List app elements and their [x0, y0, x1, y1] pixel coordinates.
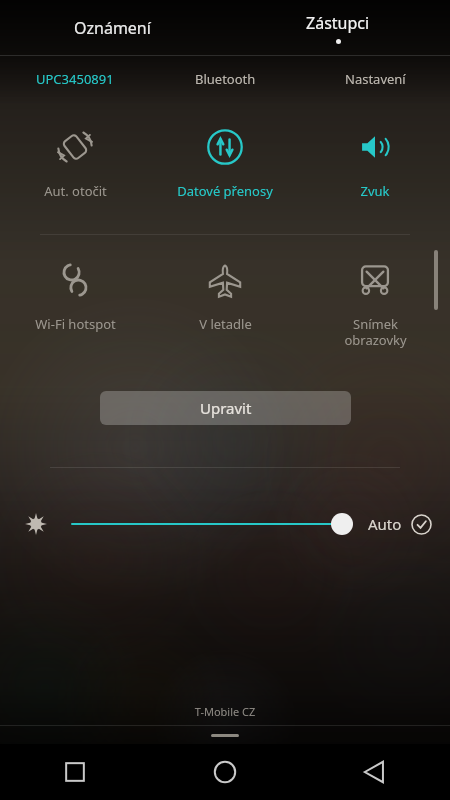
button[interactable]: Oznámení	[0, 0, 225, 55]
button[interactable]: UPC3450891	[0, 56, 150, 102]
staticText: Wi-Fi hotspot	[35, 315, 116, 333]
button[interactable]: Zástupci	[225, 0, 450, 55]
staticText: Oznámení	[74, 17, 151, 39]
staticText: Aut. otočit	[44, 182, 107, 200]
button[interactable]: Aut. otočit	[0, 102, 150, 234]
button[interactable]: Recents	[0, 744, 150, 800]
button[interactable]: Zvuk	[300, 102, 450, 234]
button[interactable]: Wi-Fi hotspot	[0, 235, 150, 367]
button[interactable]: Brightness	[0, 504, 72, 544]
button[interactable]: V letadle	[150, 235, 300, 367]
staticText: UPC3450891	[36, 70, 114, 88]
staticText: Datové přenosy	[177, 182, 273, 200]
staticText: T-Mobile CZ	[0, 704, 450, 719]
staticText: Zvuk	[360, 182, 390, 200]
staticText: Upravit	[200, 398, 252, 418]
button[interactable]: Bluetooth	[150, 56, 300, 102]
staticText: V letadle	[199, 315, 252, 333]
staticText: Snímek obrazovky	[344, 315, 407, 348]
staticText: Bluetooth	[195, 70, 256, 88]
button[interactable]: Home	[150, 744, 300, 800]
staticText: Nastavení	[345, 70, 406, 88]
button[interactable]	[72, 504, 356, 544]
staticText: Zástupci	[306, 12, 370, 34]
button[interactable]: Auto	[368, 504, 432, 544]
button[interactable]: Nastavení	[300, 56, 450, 102]
button[interactable]: Snímek obrazovky	[300, 235, 450, 367]
button[interactable]: Datové přenosy	[150, 102, 300, 234]
staticText: Auto	[368, 514, 402, 534]
button[interactable]: Back	[300, 744, 450, 800]
button[interactable]: Upravit	[100, 391, 351, 425]
